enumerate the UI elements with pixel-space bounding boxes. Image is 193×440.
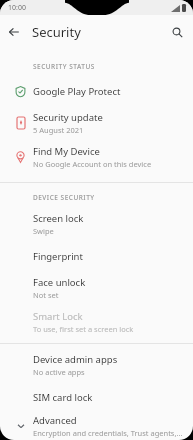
button[interactable]: Screen lock	[0, 207, 193, 241]
button[interactable]: Fingerprint	[0, 241, 193, 271]
staticText: Device admin apps	[33, 353, 118, 366]
staticText: 5 August 2021	[33, 125, 84, 135]
button[interactable]: Device admin apps	[0, 348, 193, 382]
staticText: Face unlock	[33, 276, 86, 289]
staticText: SIM card lock	[33, 391, 93, 404]
button[interactable]: Security update	[0, 106, 193, 140]
button[interactable]: Smart Lock	[0, 305, 193, 339]
staticText: Not set	[33, 290, 59, 300]
button[interactable]: Find My Device	[0, 140, 193, 174]
button[interactable]: Back	[4, 22, 24, 42]
staticText: 10:00	[8, 3, 26, 13]
staticText: Security	[32, 23, 81, 41]
button[interactable]: Advanced	[0, 412, 193, 440]
button[interactable]: Face unlock	[0, 271, 193, 305]
staticText: Google Play Protect	[33, 85, 121, 98]
staticText: Smart Lock	[33, 310, 83, 323]
staticText: Swipe	[33, 226, 54, 236]
button[interactable]: Search	[167, 22, 187, 42]
button[interactable]: SIM card lock	[0, 382, 193, 412]
staticText: Find My Device	[33, 145, 100, 158]
staticText: Security update	[33, 111, 103, 124]
staticText: Encryption and credentials, Trust agents…	[33, 428, 183, 438]
staticText: Advanced	[33, 414, 77, 427]
staticText: SECURITY STATUS	[33, 62, 95, 71]
staticText: Fingerprint	[33, 250, 83, 263]
staticText: To use, first set a screen lock	[33, 324, 134, 334]
staticText: No Google Account on this device	[33, 159, 152, 169]
staticText: DEVICE SECURITY	[33, 193, 95, 202]
staticText: Screen lock	[33, 212, 84, 225]
staticText: No active apps	[33, 367, 85, 377]
button[interactable]: Google Play Protect	[0, 76, 193, 106]
